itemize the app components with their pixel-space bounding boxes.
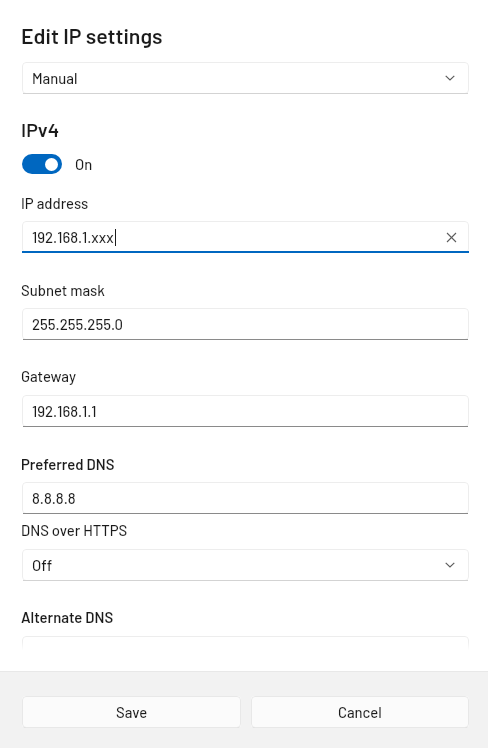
button[interactable]: Manual — [22, 62, 469, 94]
staticText: Preferred DNS — [21, 455, 115, 473]
staticText: Cancel — [338, 703, 382, 721]
staticText: Manual — [32, 69, 78, 87]
staticText: 192.168.1.1 — [32, 402, 97, 420]
button[interactable]: 8.8.8.8 — [22, 482, 469, 514]
staticText: Gateway — [21, 367, 76, 385]
staticText: 255.255.255.0 — [32, 315, 123, 333]
staticText: DNS over HTTPS — [21, 521, 128, 539]
button[interactable] — [22, 636, 469, 668]
button[interactable]: Cancel — [251, 696, 469, 728]
staticText: Off — [32, 556, 53, 574]
staticText: 192.168.1.xxx — [32, 228, 114, 246]
button[interactable]: Off — [22, 549, 469, 581]
button[interactable]: IPv4 on — [22, 154, 62, 174]
staticText: IP address — [21, 194, 89, 212]
button[interactable]: Save — [22, 696, 241, 728]
staticText: IPv4 — [21, 117, 60, 141]
button[interactable]: 255.255.255.0 — [22, 308, 469, 340]
staticText: Alternate DNS — [21, 608, 114, 626]
staticText: Subnet mask — [21, 281, 105, 299]
staticText: Edit IP settings — [21, 23, 163, 49]
staticText: 8.8.8.8 — [32, 489, 76, 507]
button[interactable]: 192.168.1.1 — [22, 395, 469, 427]
staticText: On — [75, 155, 93, 173]
button[interactable]: 192.168.1.xxx — [22, 221, 469, 253]
staticText: Save — [116, 703, 148, 721]
